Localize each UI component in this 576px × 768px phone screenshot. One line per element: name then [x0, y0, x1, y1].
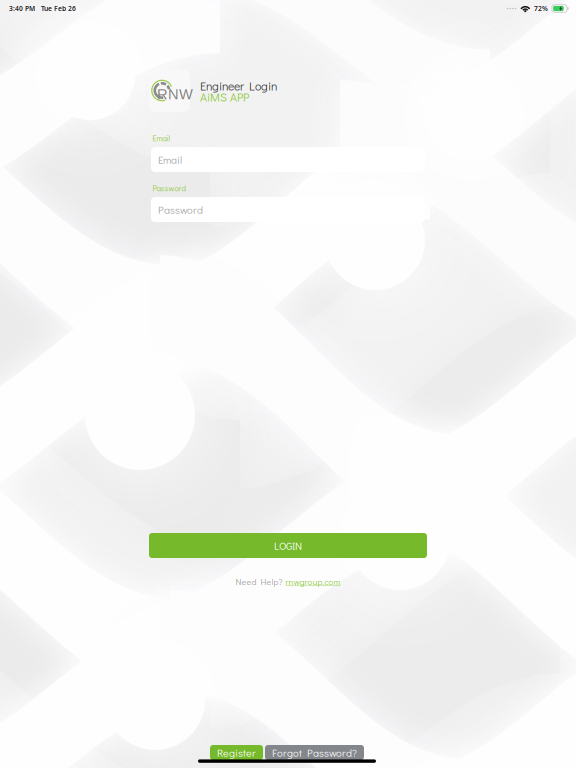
staticText: Engineer Login	[200, 78, 277, 94]
staticText: Forgot Password?	[272, 745, 357, 759]
button[interactable]: LOGIN	[149, 533, 427, 558]
staticText: RNW	[157, 86, 193, 102]
staticText: Email	[152, 133, 170, 143]
staticText: Register	[217, 745, 256, 759]
staticText: Password	[158, 202, 203, 216]
staticText: LOGIN	[274, 538, 302, 552]
button[interactable]: Register	[210, 745, 263, 760]
staticText: Password	[152, 183, 185, 193]
button[interactable]: Email	[151, 147, 425, 172]
staticText: AiMS APP	[200, 89, 249, 105]
staticText: Tue Feb 26	[35, 4, 76, 13]
staticText: 3:40 PM	[9, 4, 35, 13]
button[interactable]: Forgot Password?	[265, 745, 364, 760]
staticText: rnwgroup.com	[285, 576, 340, 587]
staticText: Need Help?	[235, 576, 282, 587]
staticText: Email	[158, 152, 182, 166]
staticText: 72%	[534, 4, 548, 13]
button[interactable]: Password	[151, 197, 425, 222]
button[interactable]: Need Help?	[149, 575, 427, 588]
